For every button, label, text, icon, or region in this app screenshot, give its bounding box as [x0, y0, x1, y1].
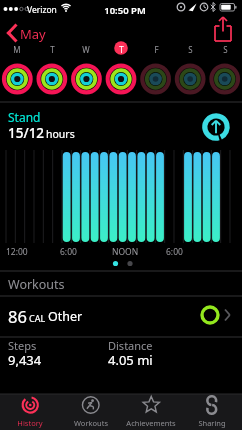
staticText: Workouts	[74, 418, 108, 428]
staticText: T	[119, 44, 124, 55]
button[interactable]	[104, 58, 138, 100]
staticText: History	[17, 418, 43, 428]
staticText: Workouts	[8, 276, 65, 293]
staticText: 6:00	[166, 246, 183, 258]
button[interactable]	[0, 58, 34, 100]
staticText: T	[50, 44, 55, 55]
staticText: 15/12	[8, 124, 45, 142]
staticText: W	[82, 44, 90, 55]
button[interactable]	[0, 394, 60, 430]
staticText: 9,434	[8, 351, 42, 369]
button[interactable]	[61, 394, 121, 430]
button[interactable]	[182, 394, 242, 430]
staticText: 6:00	[60, 246, 77, 258]
staticText: NOON	[112, 246, 139, 258]
staticText: 4.05 mi	[108, 351, 153, 369]
button[interactable]	[208, 14, 240, 44]
staticText: May	[20, 25, 46, 43]
staticText: Distance	[108, 338, 153, 353]
button[interactable]	[0, 297, 242, 337]
staticText: Other	[48, 308, 83, 325]
staticText: S	[223, 44, 228, 55]
staticText: F	[154, 44, 159, 55]
button[interactable]	[69, 58, 103, 100]
button[interactable]	[202, 113, 230, 141]
staticText: Stand	[8, 109, 41, 125]
staticText: Sharing	[198, 418, 226, 428]
button[interactable]	[173, 58, 207, 100]
staticText: Verizon	[27, 4, 57, 16]
staticText: S	[188, 44, 193, 55]
staticText: 12:00	[6, 246, 28, 258]
button[interactable]	[121, 394, 181, 430]
button[interactable]	[138, 58, 172, 100]
staticText: Steps	[8, 338, 37, 353]
staticText: 10:50 PM	[104, 4, 146, 17]
button[interactable]	[0, 18, 52, 44]
button[interactable]	[35, 58, 69, 100]
staticText: hours	[46, 127, 75, 141]
staticText: M	[13, 44, 21, 55]
staticText: 86	[8, 305, 27, 327]
staticText: CAL	[29, 312, 46, 324]
staticText: Achievements	[126, 418, 176, 428]
button[interactable]	[207, 58, 241, 100]
